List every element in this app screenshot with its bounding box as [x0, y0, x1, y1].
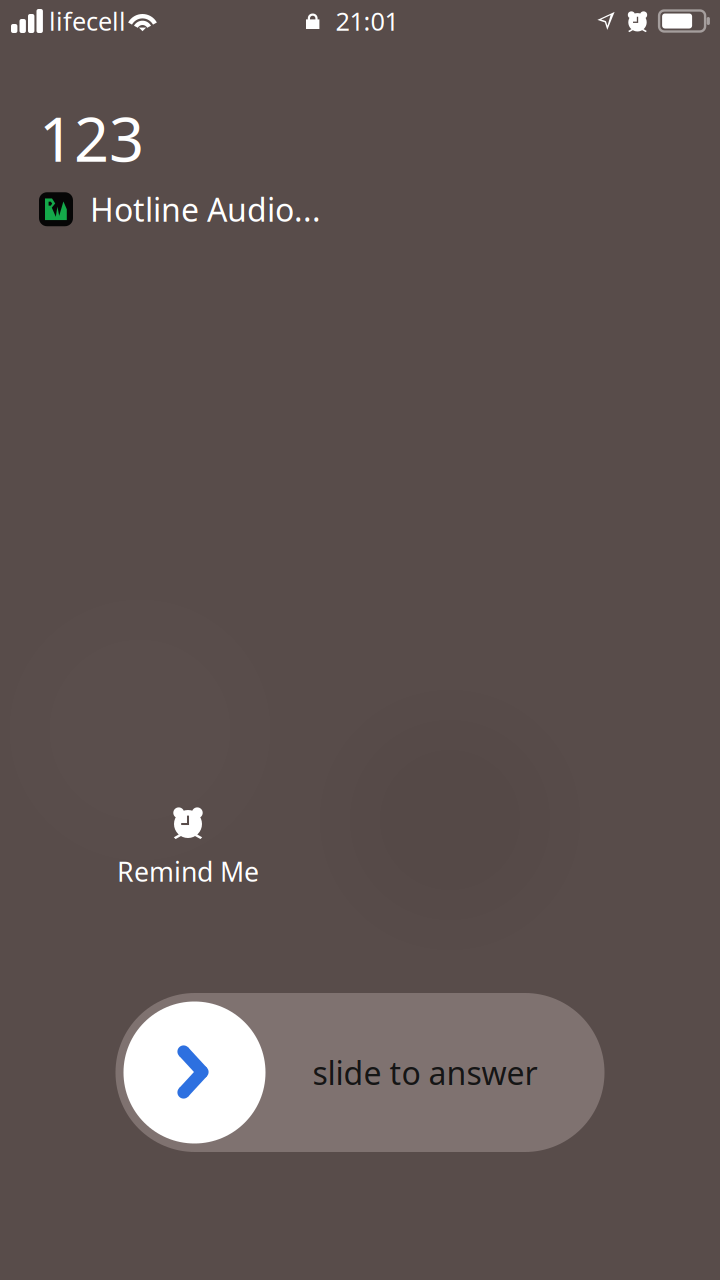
staticText: slide to answer: [312, 1051, 537, 1094]
staticText: Remind Me: [117, 854, 259, 889]
staticText: 21:01: [335, 4, 398, 38]
staticText: lifecell: [49, 4, 126, 38]
button[interactable]: slide to answer: [115, 993, 604, 1152]
button[interactable]: Remind Me: [88, 805, 288, 889]
staticText: 123: [39, 97, 144, 179]
staticText: Hotline Audio...: [90, 188, 321, 230]
